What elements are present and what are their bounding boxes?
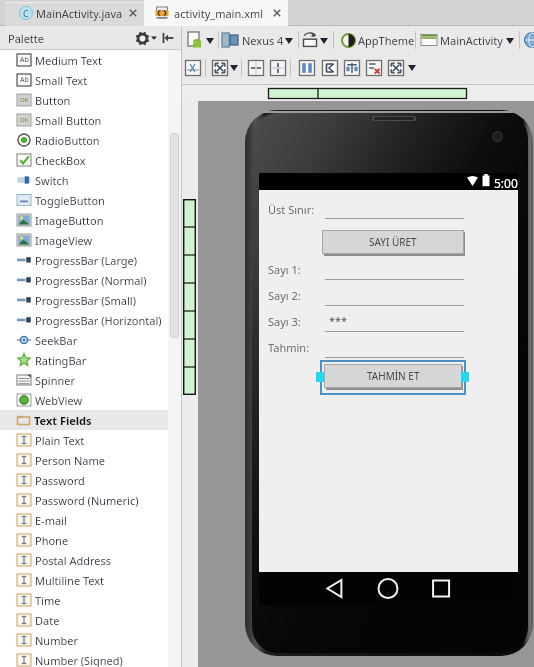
button[interactable]: activity_main.xml tab	[144, 0, 288, 26]
button[interactable]: RatingBar	[0, 350, 168, 370]
button[interactable]: Person Name	[0, 450, 168, 470]
button[interactable]: Theme	[340, 32, 356, 48]
staticText: Palette	[8, 31, 45, 46]
button[interactable]: ProgressBar (Large)	[0, 250, 168, 270]
staticText: ProgressBar (Horizontal)	[35, 313, 162, 328]
button[interactable]: TAHMİN ET	[324, 364, 462, 388]
button[interactable]: Collapse panel	[160, 30, 176, 46]
button[interactable]: Orientation	[302, 32, 318, 48]
staticText: Button	[35, 93, 71, 108]
staticText: Number (Signed)	[35, 653, 123, 667]
staticText: SeekBar	[35, 333, 78, 348]
button[interactable]: Balance	[343, 59, 360, 76]
staticText: Person Name	[35, 453, 106, 468]
staticText: C	[23, 7, 29, 19]
other: Navigation bar	[259, 572, 518, 605]
button[interactable]: Expand	[211, 59, 228, 76]
button[interactable]: Date	[0, 610, 168, 630]
button[interactable]: MainActivity.java tab	[5, 2, 144, 26]
button[interactable]: Close tab	[129, 9, 137, 17]
staticText: ProgressBar (Normal)	[35, 273, 147, 288]
staticText: Sayı 3:	[268, 314, 301, 329]
staticText: Sayı 1:	[268, 262, 301, 277]
staticText: Password	[35, 473, 85, 488]
button[interactable]: Palette settings	[134, 30, 151, 47]
staticText: MainActivity.java	[36, 6, 123, 21]
button[interactable]: Infer constraints	[387, 59, 404, 76]
button[interactable]: Close tab	[273, 9, 281, 17]
button[interactable]: Time	[0, 590, 168, 610]
button[interactable]: ToggleButton	[0, 190, 168, 210]
staticText: CheckBox	[35, 153, 86, 168]
button[interactable]: ProgressBar (Horizontal)	[0, 310, 168, 330]
staticText: Password (Numeric)	[35, 493, 139, 508]
button[interactable]: Sum	[321, 59, 338, 76]
button[interactable]: Locale	[524, 32, 534, 48]
staticText: Small Text	[35, 73, 88, 88]
button[interactable]: Align baselines	[184, 59, 201, 76]
staticText: Plain Text	[35, 433, 85, 448]
staticText: ImageView	[35, 233, 93, 248]
button[interactable]: Activity	[421, 32, 437, 48]
button[interactable]: Multiline Text	[0, 570, 168, 590]
button[interactable]: Text Fields	[0, 410, 168, 430]
staticText: Nexus 4	[242, 33, 284, 48]
staticText: OK	[20, 116, 29, 124]
button[interactable]: Plain Text	[0, 430, 168, 450]
staticText: RadioButton	[35, 133, 100, 148]
staticText: Sayı 2:	[268, 288, 301, 303]
button[interactable]: Phone	[0, 530, 168, 550]
button[interactable]: Clear constraints	[365, 59, 382, 76]
button[interactable]: CheckBox	[0, 150, 168, 170]
button[interactable]: SAYI ÜRET	[322, 230, 464, 254]
staticText: Text Fields	[34, 413, 92, 428]
button[interactable]: Switch	[0, 170, 168, 190]
button[interactable]: Distribute	[298, 59, 315, 76]
button[interactable]: Password	[0, 470, 168, 490]
staticText: ProgressBar (Small)	[35, 293, 136, 308]
staticText: Multiline Text	[35, 573, 105, 588]
button[interactable]: Pack horizontally	[247, 59, 264, 76]
staticText: Ab	[20, 75, 29, 85]
button[interactable]: ProgressBar (Small)	[0, 290, 168, 310]
staticText: MainActivity	[440, 33, 503, 48]
button[interactable]: SeekBar	[0, 330, 168, 350]
staticText: Medium Text	[35, 53, 102, 68]
staticText: ToggleButton	[35, 193, 105, 208]
button[interactable]: Pack vertically	[269, 59, 286, 76]
button[interactable]: ImageButton	[0, 210, 168, 230]
button[interactable]: Device configuration	[187, 32, 203, 48]
button[interactable]: Ab	[0, 70, 168, 90]
staticText: Tahmin:	[268, 340, 310, 355]
staticText: AppTheme	[358, 33, 415, 48]
staticText: RatingBar	[35, 353, 87, 368]
button[interactable]: Postal Address	[0, 550, 168, 570]
button[interactable]: E-mail	[0, 510, 168, 530]
other: Battery	[482, 174, 490, 187]
staticText: ***	[329, 313, 348, 328]
button[interactable]: OK	[0, 110, 168, 130]
button[interactable]: OK	[0, 90, 168, 110]
button[interactable]: RadioButton	[0, 130, 168, 150]
staticText: Small Button	[35, 113, 102, 128]
button[interactable]: Spinner	[0, 370, 168, 390]
other: Wifi	[466, 176, 479, 186]
staticText: SAYI ÜRET	[369, 235, 417, 249]
button[interactable]: WebView	[0, 390, 168, 410]
button[interactable]: Nexus 4 device	[222, 32, 238, 48]
button[interactable]: Password (Numeric)	[0, 490, 168, 510]
staticText: Ab	[20, 55, 29, 65]
button[interactable]: ImageView	[0, 230, 168, 250]
staticText: OK	[20, 96, 29, 104]
staticText: Date	[35, 613, 60, 628]
staticText: E-mail	[35, 513, 67, 528]
button[interactable]: Number	[0, 630, 168, 650]
staticText: Üst Sınır:	[268, 202, 315, 217]
staticText: TAHMİN ET	[367, 369, 420, 383]
staticText: Postal Address	[35, 553, 112, 568]
button[interactable]: ProgressBar (Normal)	[0, 270, 168, 290]
button[interactable]: Ab	[0, 50, 168, 70]
staticText: Phone	[35, 533, 69, 548]
staticText: Number	[35, 633, 78, 648]
button[interactable]: Number (Signed)	[0, 650, 168, 667]
